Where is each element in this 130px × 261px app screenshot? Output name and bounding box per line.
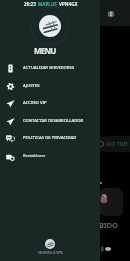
button[interactable]: AJUSTES — [0, 77, 100, 95]
staticText: ADD TIME — [106, 141, 128, 147]
button[interactable]: Restablecer — [0, 147, 100, 165]
staticText: BIDO — [99, 220, 118, 230]
staticText: POLITICAS DE PRIVACIDAD — [23, 135, 77, 141]
button[interactable]: More options — [104, 7, 118, 21]
button[interactable]: ADD TIME — [96, 136, 130, 152]
button[interactable]: POLITICAS DE PRIVACIDAD — [0, 129, 100, 147]
staticText: VPN4GX — [59, 1, 78, 7]
staticText: 20:23 — [24, 1, 36, 7]
staticText: AJUSTES — [23, 83, 40, 89]
button[interactable]: ACCESO VIP — [0, 94, 100, 112]
button[interactable]: CONTACTAR DESARROLLADOR — [0, 112, 100, 130]
staticText: CONTACTAR DESARROLLADOR — [23, 118, 84, 124]
staticText: Restablecer — [23, 153, 46, 159]
staticText: ACTUALIZAR SERVIDORES — [23, 65, 75, 71]
staticText: SEVENPLUS VPN — [38, 251, 63, 255]
staticText: ACCESO VIP — [23, 100, 47, 106]
button[interactable]: ACTUALIZAR SERVIDORES — [0, 59, 100, 77]
staticText: MAPLUS — [38, 1, 57, 7]
staticText: MENU — [34, 45, 56, 56]
